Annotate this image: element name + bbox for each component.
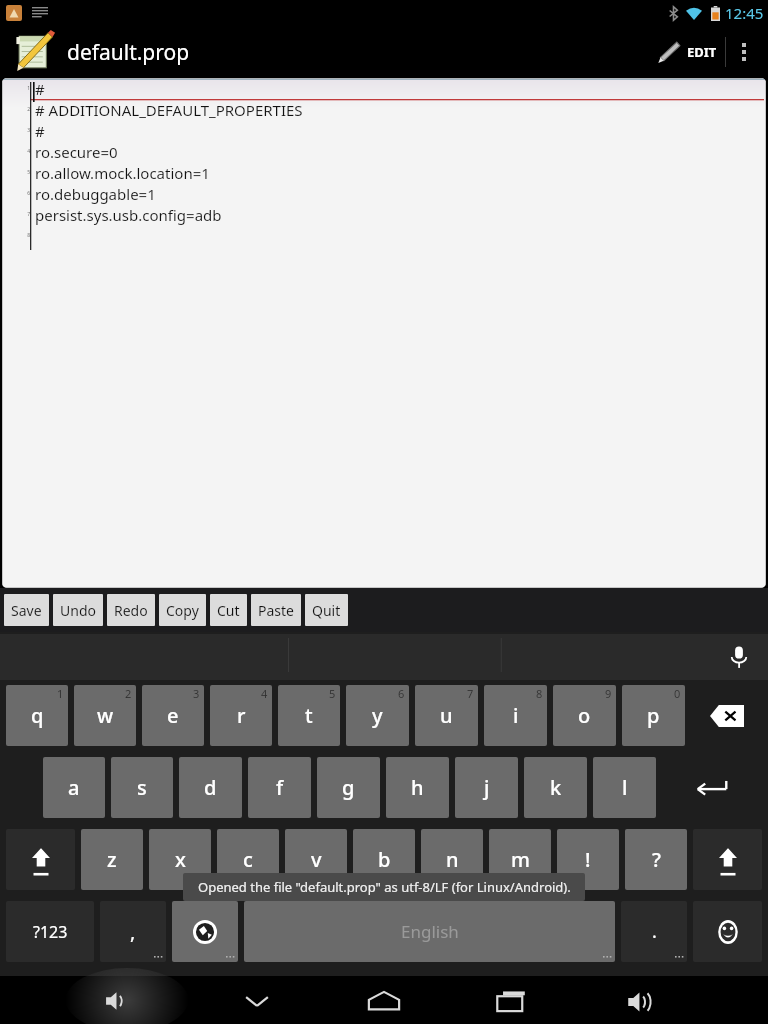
button[interactable]: p xyxy=(622,685,685,746)
staticText: c xyxy=(243,846,253,873)
button[interactable]: q xyxy=(6,685,68,746)
button[interactable]: l xyxy=(593,757,656,818)
button[interactable]: f xyxy=(248,757,311,818)
button[interactable]: Shift xyxy=(6,829,75,890)
button[interactable]: r xyxy=(210,685,272,746)
button[interactable]: Recent apps xyxy=(496,990,528,1014)
button[interactable]: e xyxy=(142,685,204,746)
staticText: default.prop xyxy=(67,38,190,67)
staticText: 7 xyxy=(27,211,30,218)
staticText: 6 xyxy=(398,686,405,701)
staticText: q xyxy=(31,702,44,729)
staticText: Save xyxy=(11,601,42,620)
staticText: 0 xyxy=(674,686,681,701)
button[interactable]: , xyxy=(100,901,166,962)
staticText: 1 xyxy=(57,686,64,701)
button[interactable]: s xyxy=(111,757,173,818)
button[interactable]: Cut xyxy=(210,594,247,626)
button[interactable]: Volume down xyxy=(104,988,130,1014)
button[interactable]: Redo xyxy=(107,594,155,626)
staticText: p xyxy=(647,702,660,729)
button[interactable]: Copy xyxy=(159,594,206,626)
button[interactable]: ! xyxy=(557,829,619,890)
button[interactable]: k xyxy=(524,757,587,818)
staticText: Undo xyxy=(60,601,96,620)
staticText: s xyxy=(137,774,147,801)
button[interactable]: Change language xyxy=(172,901,238,962)
staticText: e xyxy=(167,702,179,729)
staticText: 2 xyxy=(125,686,132,701)
button[interactable]: Quit xyxy=(305,594,348,626)
staticText: ro.allow.mock.location=1 xyxy=(35,163,210,183)
staticText: # xyxy=(35,79,45,99)
button[interactable]: Paste xyxy=(251,594,301,626)
button[interactable]: Backspace xyxy=(691,685,762,746)
button[interactable]: h xyxy=(386,757,449,818)
button[interactable]: a xyxy=(43,757,105,818)
staticText: 4 xyxy=(27,148,30,155)
staticText: f xyxy=(276,774,284,801)
button[interactable]: Save xyxy=(4,594,49,626)
staticText: Copy xyxy=(166,601,199,620)
staticText: z xyxy=(107,846,117,873)
button[interactable]: Emoji xyxy=(693,901,762,962)
staticText: 1 xyxy=(27,85,30,92)
button[interactable]: d xyxy=(179,757,242,818)
staticText: m xyxy=(511,846,530,873)
button[interactable]: . xyxy=(621,901,687,962)
button[interactable]: i xyxy=(484,685,547,746)
staticText: ! xyxy=(585,846,591,873)
staticText: EDIT xyxy=(687,43,717,61)
button[interactable]: c xyxy=(217,829,279,890)
button[interactable]: Undo xyxy=(53,594,103,626)
staticText: x xyxy=(175,846,186,873)
button[interactable]: n xyxy=(421,829,483,890)
button[interactable]: ? xyxy=(625,829,687,890)
button[interactable]: 1 xyxy=(2,78,766,588)
button[interactable]: Shift xyxy=(693,829,762,890)
button[interactable]: v xyxy=(285,829,347,890)
staticText: u xyxy=(440,702,453,729)
button[interactable]: Volume up xyxy=(626,988,654,1016)
button[interactable]: Enter xyxy=(662,757,762,818)
button[interactable]: Voice input xyxy=(726,644,752,670)
button[interactable]: More options xyxy=(726,26,762,78)
staticText: r xyxy=(237,702,246,729)
button[interactable]: m xyxy=(489,829,551,890)
staticText: 8 xyxy=(536,686,543,701)
staticText: ro.debuggable=1 xyxy=(35,184,156,204)
staticText: Quit xyxy=(312,601,341,620)
button[interactable]: Hide keyboard xyxy=(240,990,274,1012)
button[interactable]: t xyxy=(278,685,340,746)
staticText: i xyxy=(513,702,519,729)
staticText: 3 xyxy=(27,127,30,134)
staticText: . xyxy=(652,919,657,944)
button[interactable]: x xyxy=(149,829,211,890)
staticText: 9 xyxy=(605,686,612,701)
staticText: ? xyxy=(652,846,661,873)
button[interactable]: u xyxy=(415,685,478,746)
button[interactable]: o xyxy=(553,685,616,746)
staticText: l xyxy=(622,774,628,801)
staticText: 6 xyxy=(27,190,30,197)
button[interactable]: y xyxy=(346,685,409,746)
button[interactable]: Home xyxy=(366,989,402,1013)
button[interactable]: English xyxy=(244,901,615,962)
button[interactable]: z xyxy=(81,829,143,890)
staticText: g xyxy=(342,774,355,801)
staticText: o xyxy=(578,702,591,729)
staticText: Paste xyxy=(258,601,294,620)
staticText: d xyxy=(204,774,217,801)
staticText: , xyxy=(130,918,136,945)
button[interactable]: w xyxy=(74,685,136,746)
staticText: n xyxy=(446,846,459,873)
staticText: b xyxy=(378,846,391,873)
staticText: h xyxy=(411,774,424,801)
staticText: 3 xyxy=(193,686,200,701)
button[interactable]: j xyxy=(455,757,518,818)
staticText: English xyxy=(401,920,459,943)
button[interactable]: EDIT xyxy=(648,26,725,78)
button[interactable]: ?123 xyxy=(6,901,94,962)
button[interactable]: g xyxy=(317,757,380,818)
button[interactable]: b xyxy=(353,829,415,890)
